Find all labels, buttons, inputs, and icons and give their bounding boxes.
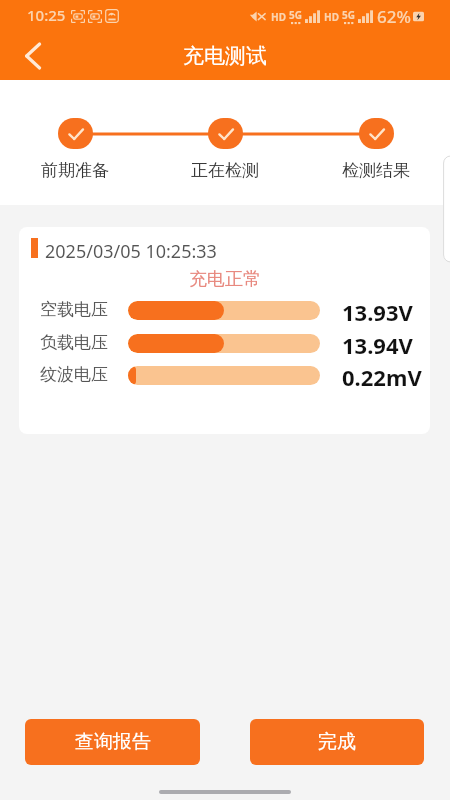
staticText: 充电测试: [183, 43, 267, 69]
staticText: 13.94V: [342, 330, 413, 360]
staticText: 查询报告: [75, 730, 151, 754]
staticText: 5G: [342, 8, 355, 22]
staticText: 检测结果: [342, 160, 410, 181]
staticText: 5G: [289, 8, 302, 22]
staticText: 2025/03/05 10:25:33: [45, 239, 217, 264]
staticText: HD: [324, 10, 339, 24]
staticText: 前期准备: [41, 160, 109, 181]
staticText: 10:25: [27, 5, 66, 25]
button[interactable]: 正在检测: [180, 114, 270, 181]
staticText: 62%: [377, 5, 411, 28]
staticText: HD: [271, 10, 286, 24]
staticText: 正在检测: [191, 160, 259, 181]
button[interactable]: 检测结果: [331, 114, 421, 181]
staticText: 空载电压: [40, 299, 108, 320]
button[interactable]: 前期准备: [30, 114, 120, 181]
staticText: 充电正常: [189, 268, 261, 291]
staticText: 负载电压: [40, 332, 108, 353]
button[interactable]: 完成: [250, 719, 424, 765]
button[interactable]: 查询报告: [25, 719, 200, 765]
staticText: 完成: [318, 730, 356, 754]
staticText: 13.93V: [342, 297, 413, 327]
button[interactable]: Back: [8, 32, 58, 80]
staticText: 纹波电压: [40, 364, 108, 385]
staticText: 0.22mV: [342, 362, 422, 392]
